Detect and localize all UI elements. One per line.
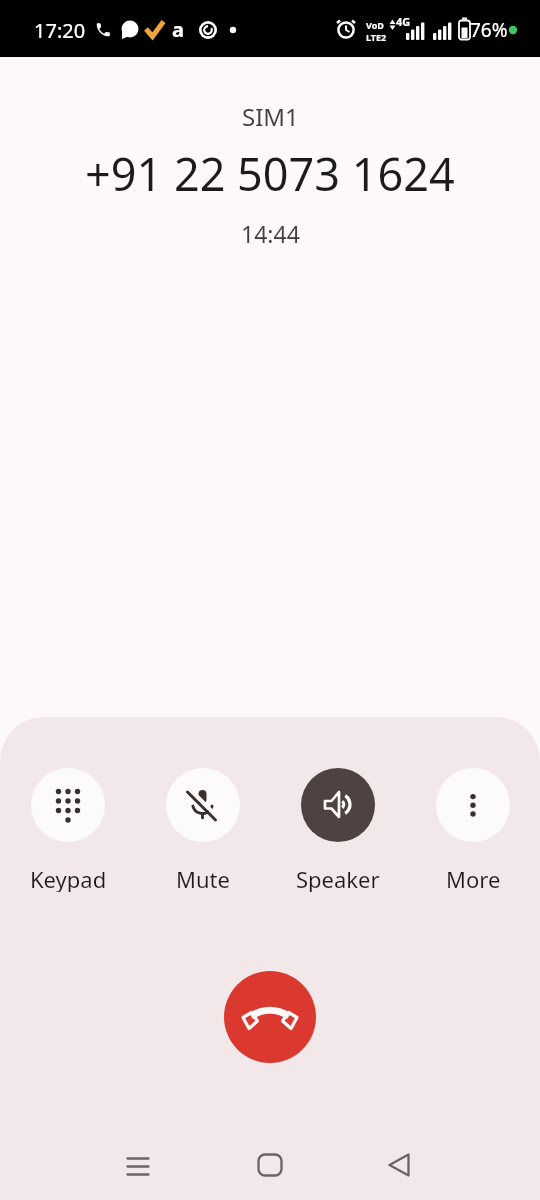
- staticText: 14:44: [241, 218, 300, 248]
- staticText: 4G: [396, 14, 411, 29]
- staticText: a: [172, 16, 184, 42]
- button[interactable]: [180, 1130, 360, 1200]
- staticText: +91 22 5073 1624: [85, 143, 455, 201]
- button[interactable]: [301, 768, 375, 842]
- button[interactable]: [224, 971, 316, 1063]
- staticText: VoD: [366, 19, 384, 31]
- button[interactable]: [360, 1130, 540, 1200]
- button[interactable]: [436, 768, 510, 842]
- staticText: 17:20: [34, 17, 86, 44]
- button[interactable]: [31, 768, 105, 842]
- staticText: Keypad: [30, 864, 107, 892]
- button[interactable]: [0, 1130, 180, 1200]
- button[interactable]: [166, 768, 240, 842]
- staticText: More: [446, 864, 501, 892]
- staticText: SIM1: [242, 100, 299, 130]
- staticText: LTE2: [366, 31, 387, 43]
- staticText: Mute: [176, 864, 230, 892]
- staticText: Speaker: [296, 864, 380, 892]
- staticText: 76%: [470, 17, 508, 43]
